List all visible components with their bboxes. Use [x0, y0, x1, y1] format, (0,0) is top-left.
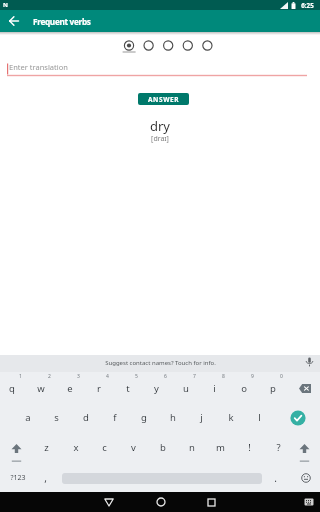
- staticText: 1: [19, 373, 22, 380]
- button[interactable]: h: [158, 402, 187, 432]
- staticText: m: [216, 441, 225, 454]
- staticText: x: [73, 441, 79, 454]
- button[interactable]: [298, 492, 320, 512]
- button[interactable]: x: [61, 432, 90, 462]
- button[interactable]: d: [71, 402, 100, 432]
- button[interactable]: [2, 433, 31, 463]
- button[interactable]: [96, 492, 121, 512]
- button[interactable]: s: [42, 402, 71, 432]
- staticText: 7: [193, 373, 196, 380]
- staticText: q: [9, 382, 15, 395]
- button[interactable]: [199, 492, 224, 512]
- staticText: l: [258, 411, 261, 424]
- button[interactable]: c: [90, 432, 119, 462]
- staticText: 6: [164, 373, 167, 380]
- staticText: s: [54, 411, 59, 424]
- staticText: t: [126, 382, 130, 395]
- button[interactable]: [4, 11, 24, 31]
- staticText: Suggest contact names? Touch for info.: [105, 359, 216, 367]
- staticText: 0: [280, 373, 283, 380]
- staticText: j: [200, 411, 203, 424]
- button[interactable]: [7, 60, 313, 78]
- button[interactable]: a: [13, 402, 42, 432]
- button[interactable]: o: [229, 373, 258, 403]
- button[interactable]: !: [235, 432, 264, 462]
- button[interactable]: q: [0, 373, 26, 403]
- staticText: w: [37, 382, 45, 395]
- staticText: Enter translation: [9, 62, 68, 72]
- button[interactable]: [283, 403, 312, 433]
- button[interactable]: [148, 492, 173, 512]
- staticText: h: [170, 411, 176, 424]
- staticText: g: [141, 411, 147, 424]
- button[interactable]: t: [113, 373, 142, 403]
- button[interactable]: i: [200, 373, 229, 403]
- staticText: 2: [48, 373, 51, 380]
- button[interactable]: .: [263, 463, 287, 492]
- button[interactable]: g: [129, 402, 158, 432]
- button[interactable]: ?123: [2, 463, 34, 492]
- button[interactable]: z: [32, 432, 61, 462]
- button[interactable]: ?: [264, 432, 293, 462]
- staticText: u: [183, 382, 189, 395]
- button[interactable]: [291, 463, 320, 492]
- staticText: z: [44, 441, 49, 454]
- staticText: 9: [251, 373, 254, 380]
- button[interactable]: ,: [32, 463, 58, 492]
- staticText: [draɪ]: [151, 134, 169, 144]
- staticText: 3: [77, 373, 80, 380]
- staticText: a: [25, 411, 31, 424]
- button[interactable]: w: [26, 373, 55, 403]
- staticText: v: [131, 441, 136, 454]
- staticText: ?: [276, 441, 281, 454]
- button[interactable]: u: [171, 373, 200, 403]
- button[interactable]: [291, 373, 320, 403]
- staticText: k: [228, 411, 234, 424]
- staticText: !: [248, 441, 251, 454]
- staticText: 4: [106, 373, 109, 380]
- staticText: 5: [135, 373, 138, 380]
- staticText: o: [241, 382, 247, 395]
- button[interactable]: l: [245, 402, 274, 432]
- staticText: .: [274, 471, 277, 485]
- button[interactable]: [0, 355, 320, 372]
- staticText: ?123: [10, 473, 26, 483]
- staticText: i: [213, 382, 216, 395]
- button[interactable]: y: [142, 373, 171, 403]
- button[interactable]: [290, 433, 319, 463]
- staticText: N: [3, 1, 8, 9]
- staticText: f: [113, 411, 117, 424]
- button[interactable]: v: [119, 432, 148, 462]
- staticText: r: [97, 382, 101, 395]
- staticText: 6:25: [301, 1, 314, 9]
- staticText: y: [154, 382, 159, 395]
- staticText: Frequent verbs: [33, 16, 91, 27]
- staticText: c: [102, 441, 107, 454]
- button[interactable]: ANSWER: [138, 93, 189, 105]
- staticText: e: [67, 382, 73, 395]
- staticText: ,: [44, 471, 47, 485]
- button[interactable]: k: [216, 402, 245, 432]
- staticText: ANSWER: [148, 95, 180, 104]
- button[interactable]: j: [187, 402, 216, 432]
- button[interactable]: e: [55, 373, 84, 403]
- staticText: n: [189, 441, 195, 454]
- staticText: dry: [150, 117, 170, 135]
- button[interactable]: r: [84, 373, 113, 403]
- button[interactable]: p: [258, 373, 287, 403]
- staticText: 8: [222, 373, 225, 380]
- button[interactable]: m: [206, 432, 235, 462]
- button[interactable]: f: [100, 402, 129, 432]
- staticText: p: [270, 382, 276, 395]
- button[interactable]: b: [148, 432, 177, 462]
- staticText: b: [160, 441, 166, 454]
- button[interactable]: n: [177, 432, 206, 462]
- staticText: d: [83, 411, 89, 424]
